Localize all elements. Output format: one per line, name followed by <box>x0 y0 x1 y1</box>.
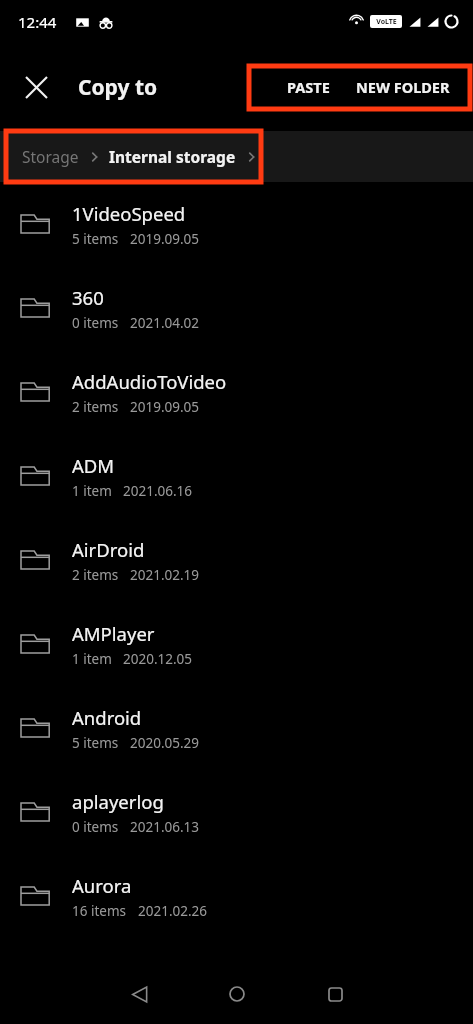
staticText: 1 item <box>72 482 112 500</box>
button[interactable]: AirDroid <box>0 518 473 602</box>
staticText: AddAudioToVideo <box>72 369 227 394</box>
staticText: 2021.02.26 <box>138 902 208 920</box>
staticText: Internal storage <box>109 146 236 167</box>
staticText: PASTE <box>287 77 330 97</box>
staticText: AMPlayer <box>72 621 155 646</box>
staticText: VoLTE <box>376 17 397 27</box>
staticText: 2021.02.19 <box>130 566 200 584</box>
staticText: 2020.05.29 <box>130 734 200 752</box>
button[interactable]: Close <box>14 65 58 109</box>
staticText: 5 items <box>72 230 119 248</box>
staticText: 2021.06.16 <box>123 482 193 500</box>
staticText: Storage <box>22 146 79 167</box>
button[interactable]: AddAudioToVideo <box>0 350 473 434</box>
staticText: 2 items <box>72 566 119 584</box>
button[interactable]: ADM <box>0 434 473 518</box>
staticText: 5 items <box>72 734 119 752</box>
button[interactable]: 1VideoSpeed <box>0 182 473 266</box>
button[interactable]: Aurora <box>0 854 473 938</box>
staticText: 1 item <box>72 650 112 668</box>
button[interactable]: Storage <box>0 138 85 175</box>
staticText: 360 <box>72 285 104 310</box>
button[interactable]: Recents <box>301 964 369 1024</box>
staticText: aplayerlog <box>72 789 164 814</box>
staticText: 0 items <box>72 314 119 332</box>
button[interactable]: PASTE <box>274 67 343 107</box>
staticText: 12:44 <box>18 12 57 32</box>
staticText: Android <box>72 705 142 730</box>
staticText: 1VideoSpeed <box>72 201 186 226</box>
staticText: 2019.09.05 <box>130 398 200 416</box>
staticText: NEW FOLDER <box>356 77 450 97</box>
staticText: 2021.04.02 <box>130 314 200 332</box>
button[interactable]: Back <box>105 964 173 1024</box>
button[interactable]: Home <box>203 964 271 1024</box>
staticText: 16 items <box>72 902 127 920</box>
staticText: 2020.12.05 <box>123 650 193 668</box>
button[interactable]: Internal storage <box>103 138 242 175</box>
button[interactable]: 360 <box>0 266 473 350</box>
button[interactable]: Android <box>0 686 473 770</box>
staticText: 2019.09.05 <box>130 230 200 248</box>
staticText: AirDroid <box>72 537 145 562</box>
staticText: ADM <box>72 453 115 478</box>
button[interactable]: NEW FOLDER <box>343 67 463 107</box>
staticText: Copy to <box>78 73 158 102</box>
staticText: 0 items <box>72 818 119 836</box>
button[interactable]: aplayerlog <box>0 770 473 854</box>
staticText: 2 items <box>72 398 119 416</box>
staticText: Aurora <box>72 873 132 898</box>
button[interactable]: AMPlayer <box>0 602 473 686</box>
staticText: 2021.06.13 <box>130 818 200 836</box>
